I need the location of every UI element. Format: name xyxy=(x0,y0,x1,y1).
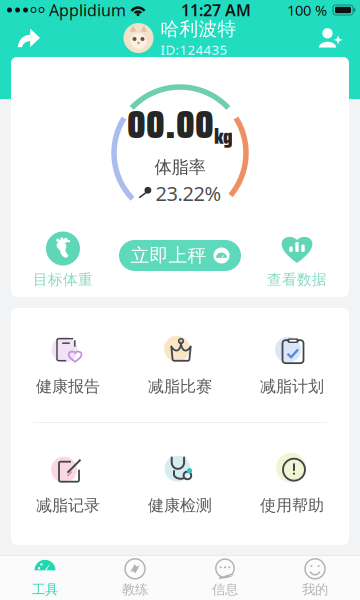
button[interactable]: 目标体重 xyxy=(21,234,105,286)
staticText: 目标体重 xyxy=(33,270,93,288)
staticText: 立即上秤 xyxy=(130,244,206,267)
staticText: 教练 xyxy=(122,581,148,598)
button[interactable]: 我的 xyxy=(270,556,360,600)
staticText: 减脂比赛 xyxy=(148,377,212,396)
button[interactable]: 健康报告 xyxy=(12,334,124,396)
button[interactable]: 减脂计划 xyxy=(236,334,348,396)
staticText: 查看数据 xyxy=(267,270,327,288)
staticText: kg xyxy=(214,119,233,153)
button[interactable]: 减脂比赛 xyxy=(124,334,236,396)
staticText: 减脂记录 xyxy=(36,496,100,515)
staticText: 工具 xyxy=(32,581,58,598)
staticText: Applidium xyxy=(49,0,126,21)
button[interactable]: 查看数据 xyxy=(255,234,339,286)
button[interactable]: 教练 xyxy=(90,556,180,600)
staticText: ID:124435 xyxy=(160,41,227,58)
button[interactable]: 减脂记录 xyxy=(12,453,124,515)
button[interactable]: Share xyxy=(6,20,52,56)
staticText: 使用帮助 xyxy=(260,496,324,515)
staticText: 体脂率 xyxy=(154,157,205,178)
staticText: 健康检测 xyxy=(148,496,212,515)
staticText: 哈利波特 xyxy=(160,18,236,41)
staticText: 健康报告 xyxy=(36,377,100,396)
staticText: 00.00 xyxy=(127,94,214,155)
button[interactable]: 健康检测 xyxy=(124,453,236,515)
button[interactable]: 工具 xyxy=(0,556,90,600)
button[interactable]: Add friend xyxy=(308,20,354,56)
staticText: 信息 xyxy=(212,581,238,598)
button[interactable]: 信息 xyxy=(180,556,270,600)
button[interactable]: 立即上秤 xyxy=(119,240,241,271)
staticText: 我的 xyxy=(302,581,328,598)
staticText: 减脂计划 xyxy=(260,377,324,396)
button[interactable]: 使用帮助 xyxy=(236,453,348,515)
staticText: 23.22% xyxy=(155,180,221,206)
staticText: 11:27 AM xyxy=(181,0,251,21)
staticText: 100 % xyxy=(287,0,327,20)
